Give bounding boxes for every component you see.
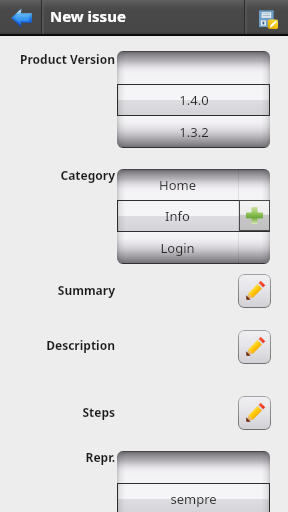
staticText: New issue bbox=[50, 6, 126, 26]
button[interactable]: Edit description bbox=[238, 330, 271, 364]
button[interactable]: Save bbox=[245, 0, 288, 36]
staticText: Product Version bbox=[20, 51, 115, 67]
button[interactable]: Edit summary bbox=[238, 274, 271, 308]
button[interactable]: Add category bbox=[239, 200, 270, 231]
button[interactable]: Back bbox=[0, 0, 42, 36]
staticText: Info bbox=[165, 207, 190, 225]
staticText: Home bbox=[159, 176, 196, 194]
button[interactable]: sempre bbox=[117, 451, 270, 512]
button[interactable]: Edit steps bbox=[238, 396, 271, 430]
staticText: 1.3.2 bbox=[179, 123, 209, 141]
staticText: Description bbox=[46, 337, 115, 353]
staticText: Summary bbox=[57, 282, 115, 298]
staticText: sempre bbox=[170, 490, 217, 508]
staticText: Repr. bbox=[85, 449, 115, 465]
staticText: Steps bbox=[82, 404, 115, 420]
staticText: Login bbox=[160, 239, 195, 257]
button[interactable]: 1.4.0 bbox=[117, 51, 270, 148]
button[interactable]: Home bbox=[117, 169, 270, 264]
staticText: Category bbox=[60, 167, 115, 183]
staticText: 1.4.0 bbox=[179, 91, 209, 109]
